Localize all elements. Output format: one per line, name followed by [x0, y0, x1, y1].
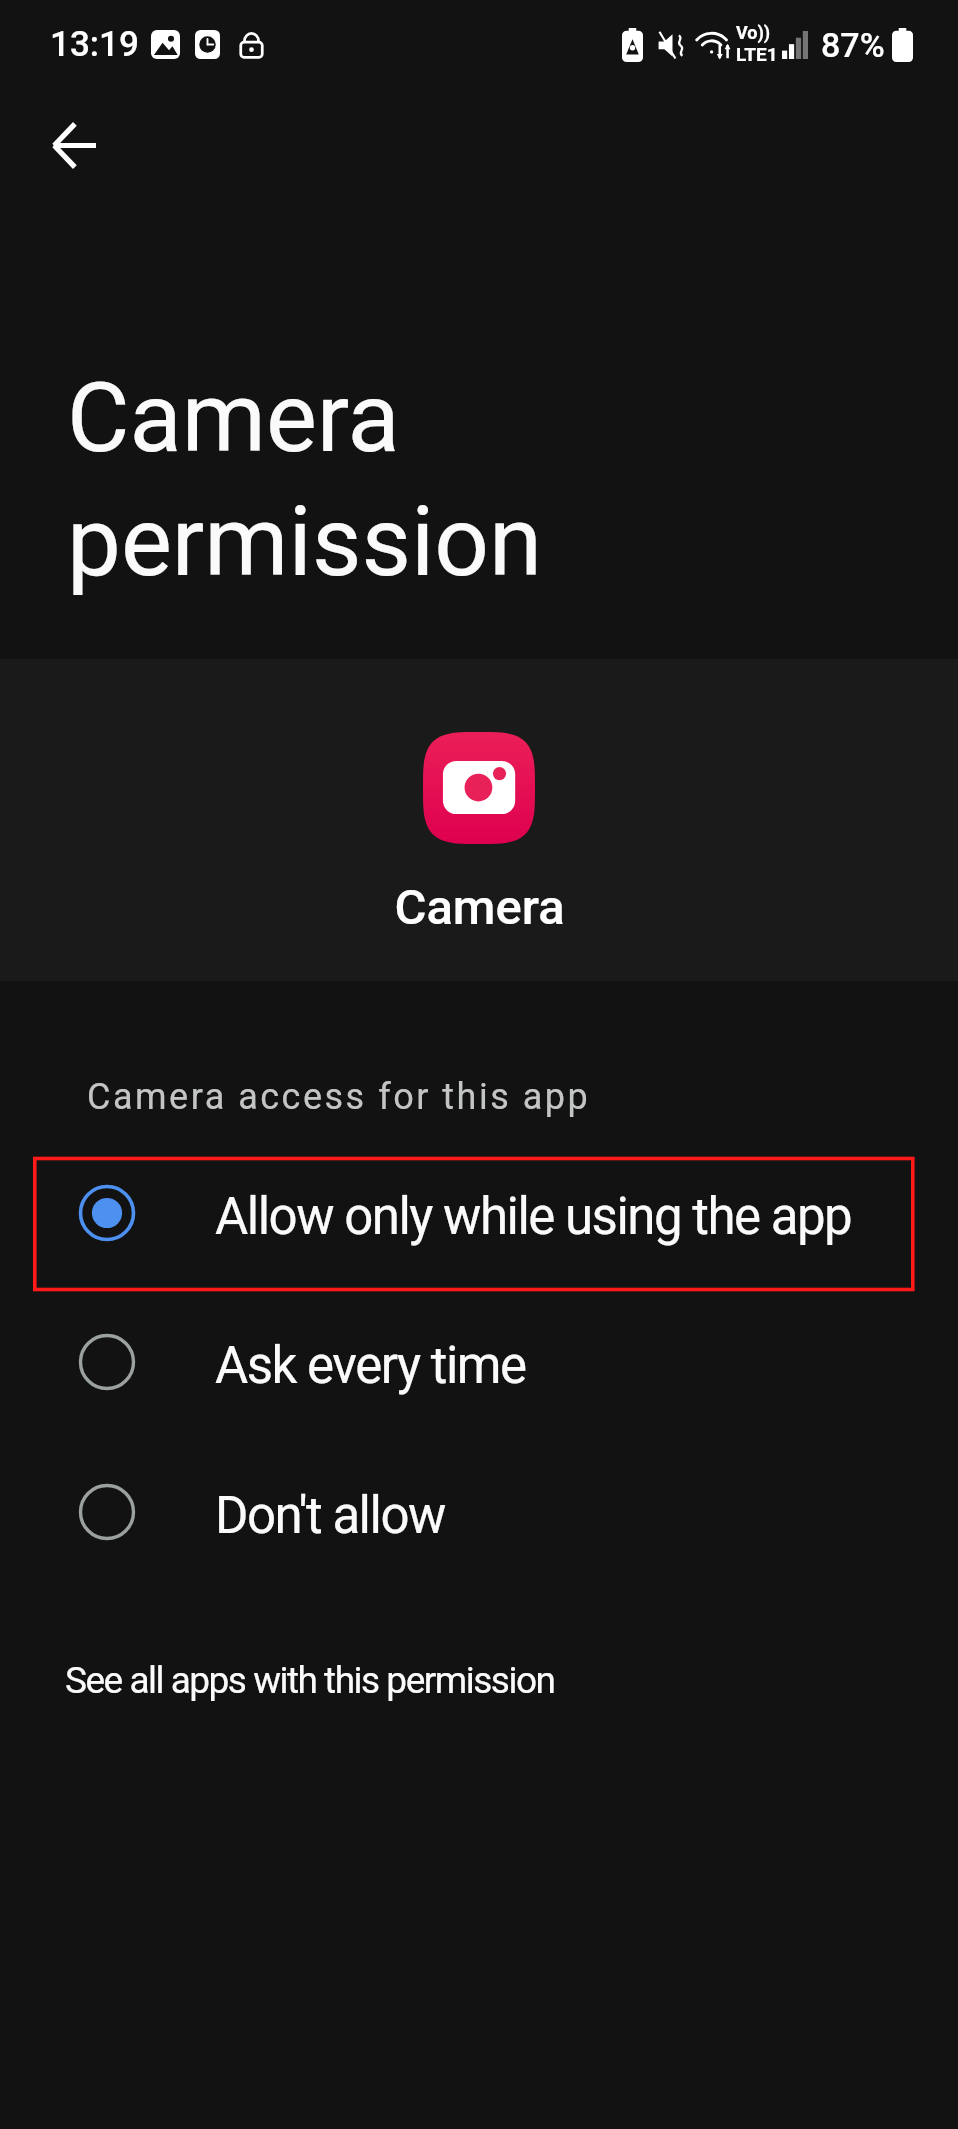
staticText: LTE1 — [736, 43, 778, 65]
staticText: Camera permission — [67, 362, 543, 599]
staticText: 87% — [821, 25, 885, 65]
staticText: 13:19 — [50, 24, 139, 65]
staticText: Camera access for this app — [87, 1076, 591, 1118]
staticText: Don't allow — [215, 1486, 445, 1546]
staticText: Camera — [394, 879, 565, 936]
button[interactable]: See all apps with this permission — [0, 1620, 958, 1730]
button[interactable]: Don't allow — [0, 1437, 958, 1587]
staticText: Ask every time — [215, 1336, 526, 1396]
staticText: Vo)) — [736, 22, 771, 43]
button[interactable]: Ask every time — [0, 1287, 958, 1437]
button[interactable]: Allow only while using the app — [0, 1138, 958, 1288]
button[interactable]: Back — [24, 95, 124, 195]
staticText: Allow only while using the app — [215, 1187, 852, 1247]
staticText: See all apps with this permission — [65, 1659, 555, 1702]
